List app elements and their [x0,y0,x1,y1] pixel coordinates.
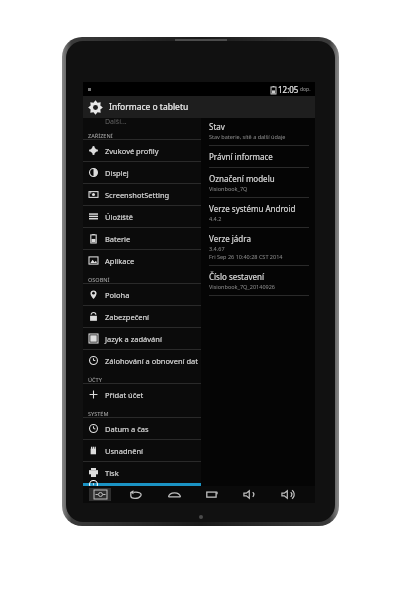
staticText: Úložiště [105,212,133,222]
staticText: dop. [300,86,311,93]
staticText: SYSTÉM [88,410,109,417]
staticText: Číslo sestavení [209,271,265,282]
staticText: Zálohování a obnovení dat [105,356,198,366]
staticText: Další... [105,117,127,126]
button[interactable]: Baterie [83,228,201,249]
button[interactable]: Zabezpečení [83,306,201,327]
staticText: Zvukové profily [105,146,159,156]
button[interactable]: ScreenshotSetting [83,184,201,205]
button[interactable]: Právní informace [209,146,309,167]
staticText: Tisk [105,468,119,478]
staticText: Baterie [105,234,131,244]
staticText: Fri Sep 26 10:40:28 CST 2014 [209,253,283,260]
staticText: 12:05 [278,84,299,95]
staticText: Visionbook_7Q_20140926 [209,283,275,290]
staticText: Verze systému Android [209,203,296,214]
staticText: ZAŘÍZENÍ [88,132,113,139]
staticText: Přidat účet [105,390,144,400]
button[interactable]: Zálohování a obnovení dat [83,350,201,371]
staticText: Usnadnění [105,446,143,456]
button[interactable]: Úložiště [83,206,201,227]
button[interactable]: Stav [209,118,309,145]
button[interactable]: Poloha [83,284,201,305]
button[interactable]: Home [155,486,193,503]
staticText: Aplikace [105,256,135,266]
button[interactable]: Tisk [83,462,201,483]
staticText: ÚČTY [88,376,102,383]
staticText: Stav [209,121,225,132]
button[interactable]: Datum a čas [83,418,201,439]
button[interactable]: Volume down [231,486,269,503]
button[interactable]: Screenshot [83,486,117,503]
button[interactable]: Recent apps [193,486,231,503]
staticText: Stav baterie, sítě a další údaje [209,133,286,140]
button[interactable]: Číslo sestavení [209,266,309,295]
staticText: ScreenshotSetting [105,190,170,200]
button[interactable]: Informace o tabletu [83,483,201,486]
button[interactable]: Verze systému Android [209,198,309,227]
button[interactable]: Back [117,486,155,503]
button[interactable]: Označení modelu [209,168,309,197]
staticText: Právní informace [209,151,273,162]
button[interactable]: Aplikace [83,250,201,271]
staticText: Informace o tabletu [109,101,189,113]
staticText: Visionbook_7Q [209,185,248,192]
button[interactable]: Zvukové profily [83,140,201,161]
staticText: OSOBNÍ [88,276,110,283]
button[interactable]: Informace o tabletu [83,96,315,118]
staticText: Jazyk a zadávání [105,334,162,344]
button[interactable]: Usnadnění [83,440,201,461]
button[interactable]: Jazyk a zadávání [83,328,201,349]
staticText: Zabezpečení [105,312,150,322]
staticText: Verze jádra [209,233,251,244]
staticText: Poloha [105,290,130,300]
staticText: 3.4.67 [209,245,225,252]
staticText: Displej [105,168,129,178]
staticText: Datum a čas [105,424,149,434]
button[interactable]: Přidat účet [83,384,201,405]
button[interactable]: Verze jádra [209,228,309,265]
button[interactable]: Displej [83,162,201,183]
button[interactable]: Volume up [269,486,307,503]
staticText: 4.4.2 [209,215,222,222]
staticText: Označení modelu [209,173,275,184]
